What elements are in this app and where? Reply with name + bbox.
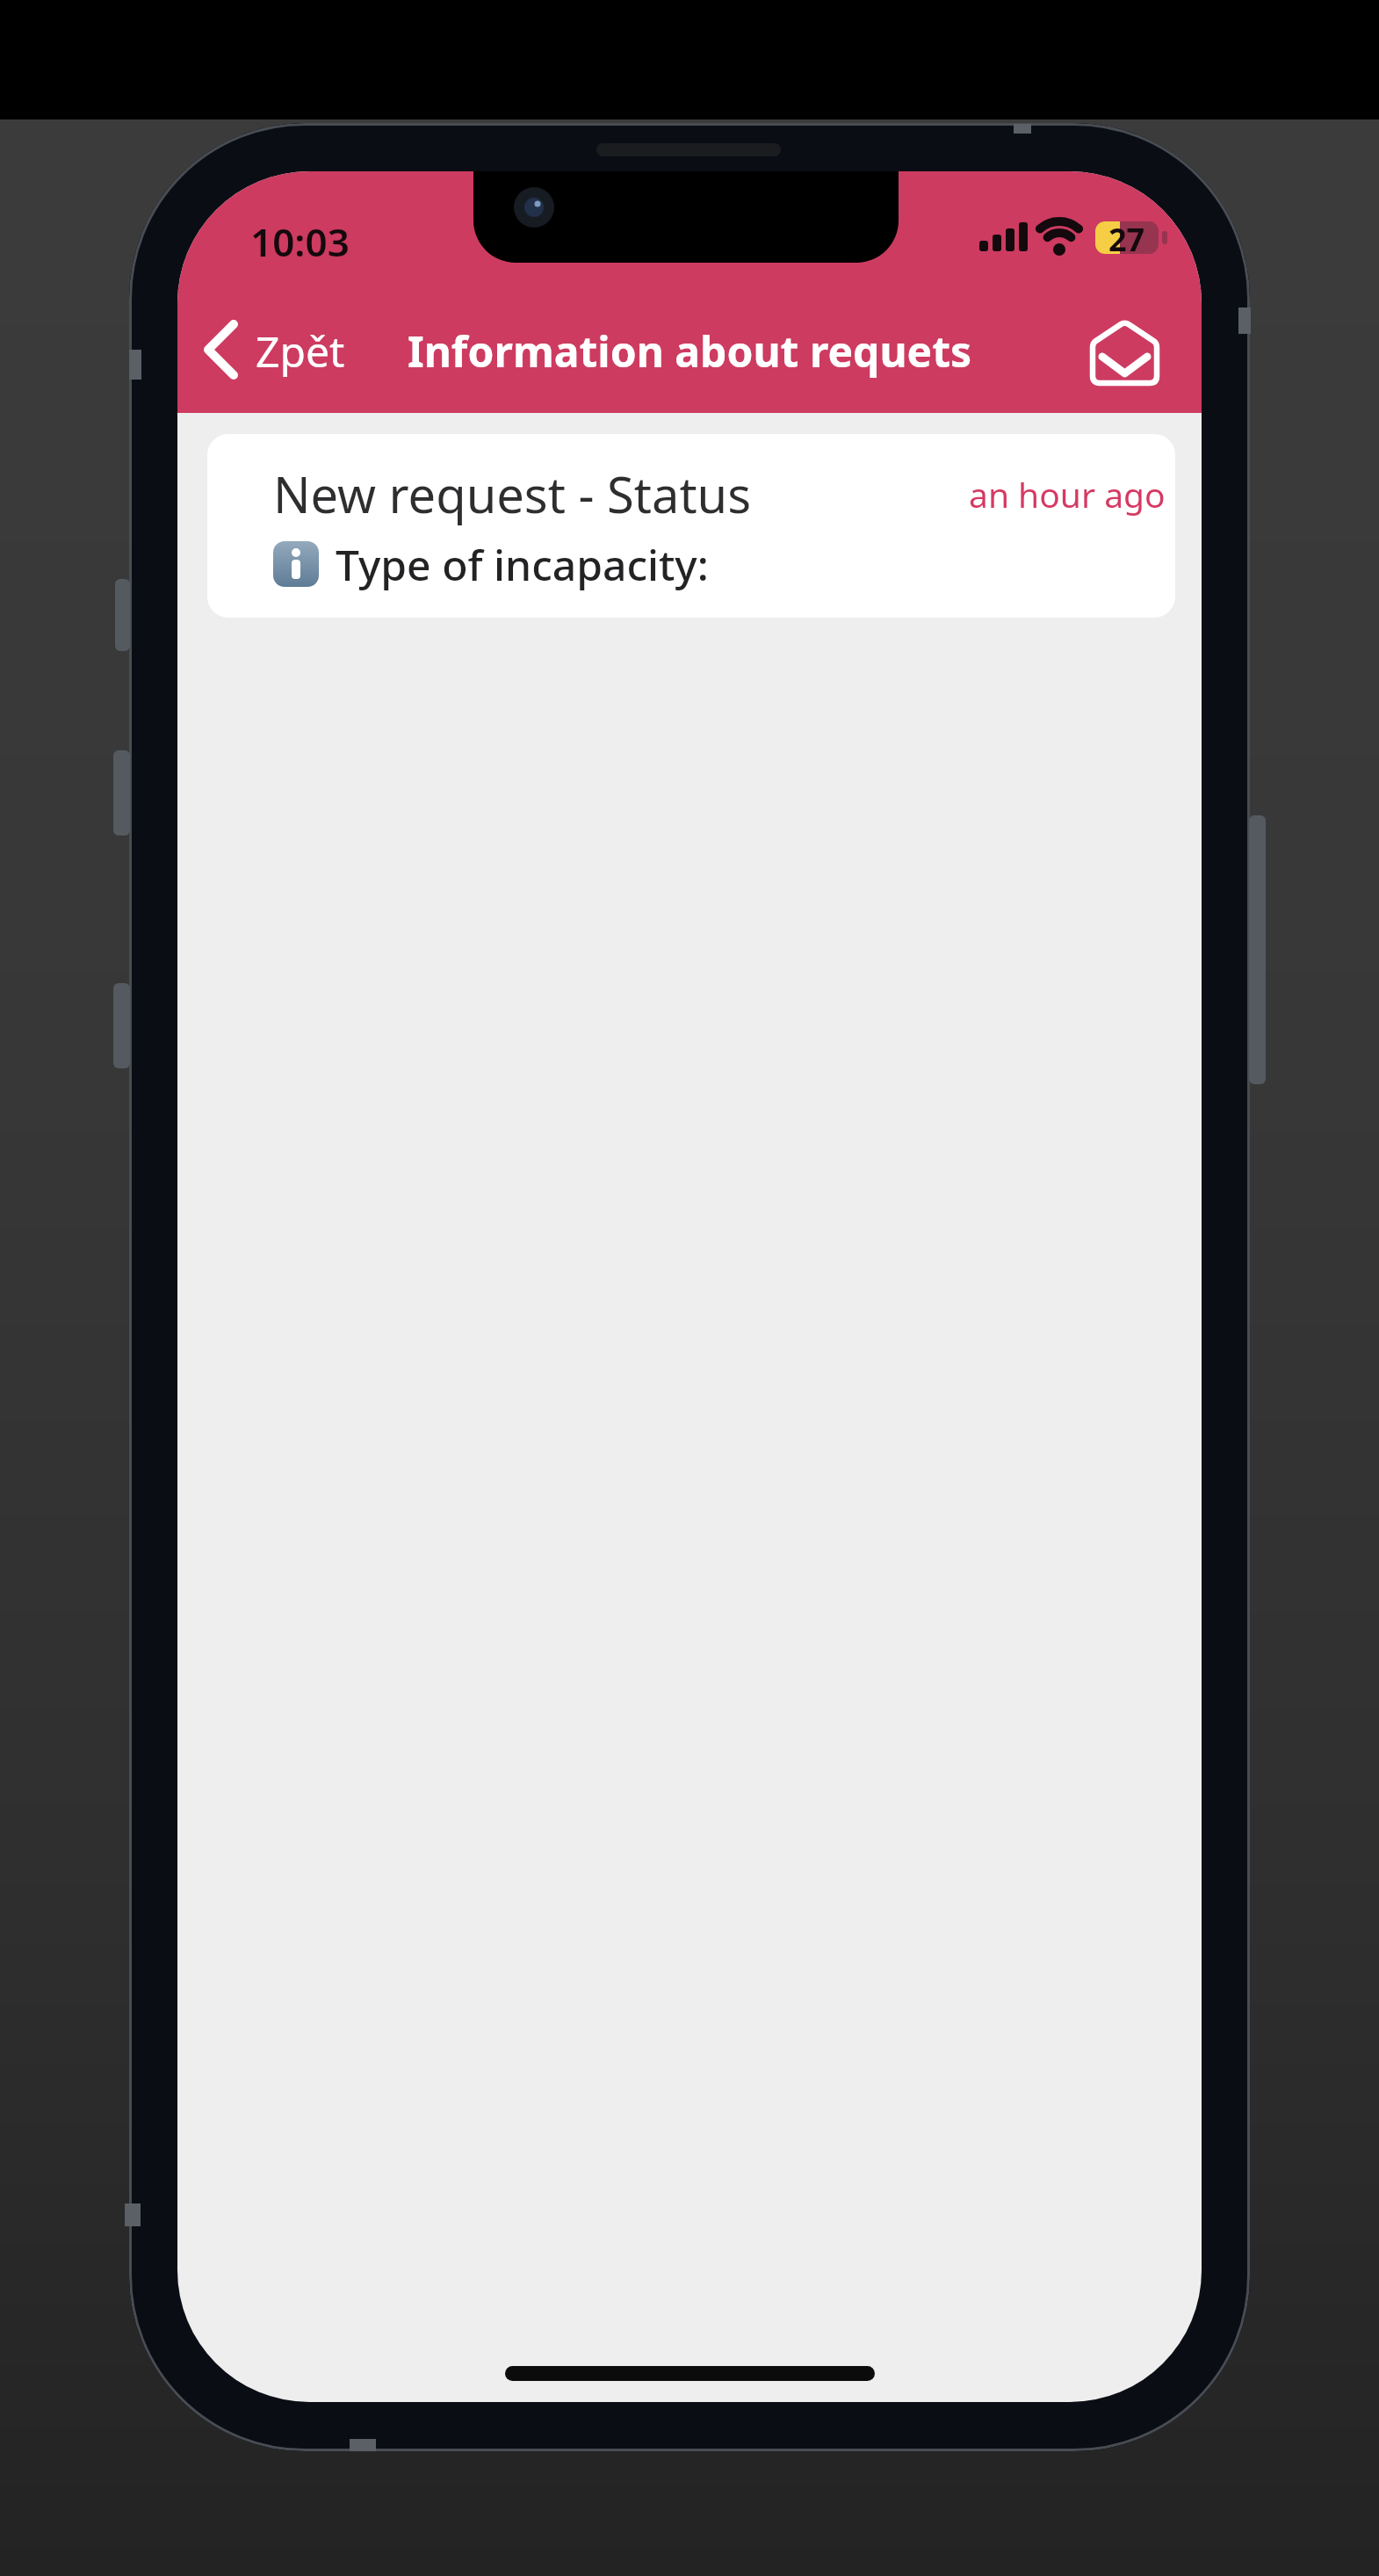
staticText: New request - Status	[273, 460, 752, 527]
staticText: 10:03	[250, 215, 350, 268]
staticText: Zpět	[256, 322, 345, 380]
button[interactable]: Zpět	[186, 298, 362, 403]
staticText: Information about requets	[408, 322, 972, 380]
staticText: Type of incapacity:	[336, 536, 709, 593]
staticText: 27	[1108, 218, 1145, 255]
staticText: an hour ago	[969, 471, 1166, 517]
button[interactable]: New request - Status	[207, 434, 1175, 618]
button[interactable]	[1082, 304, 1170, 392]
